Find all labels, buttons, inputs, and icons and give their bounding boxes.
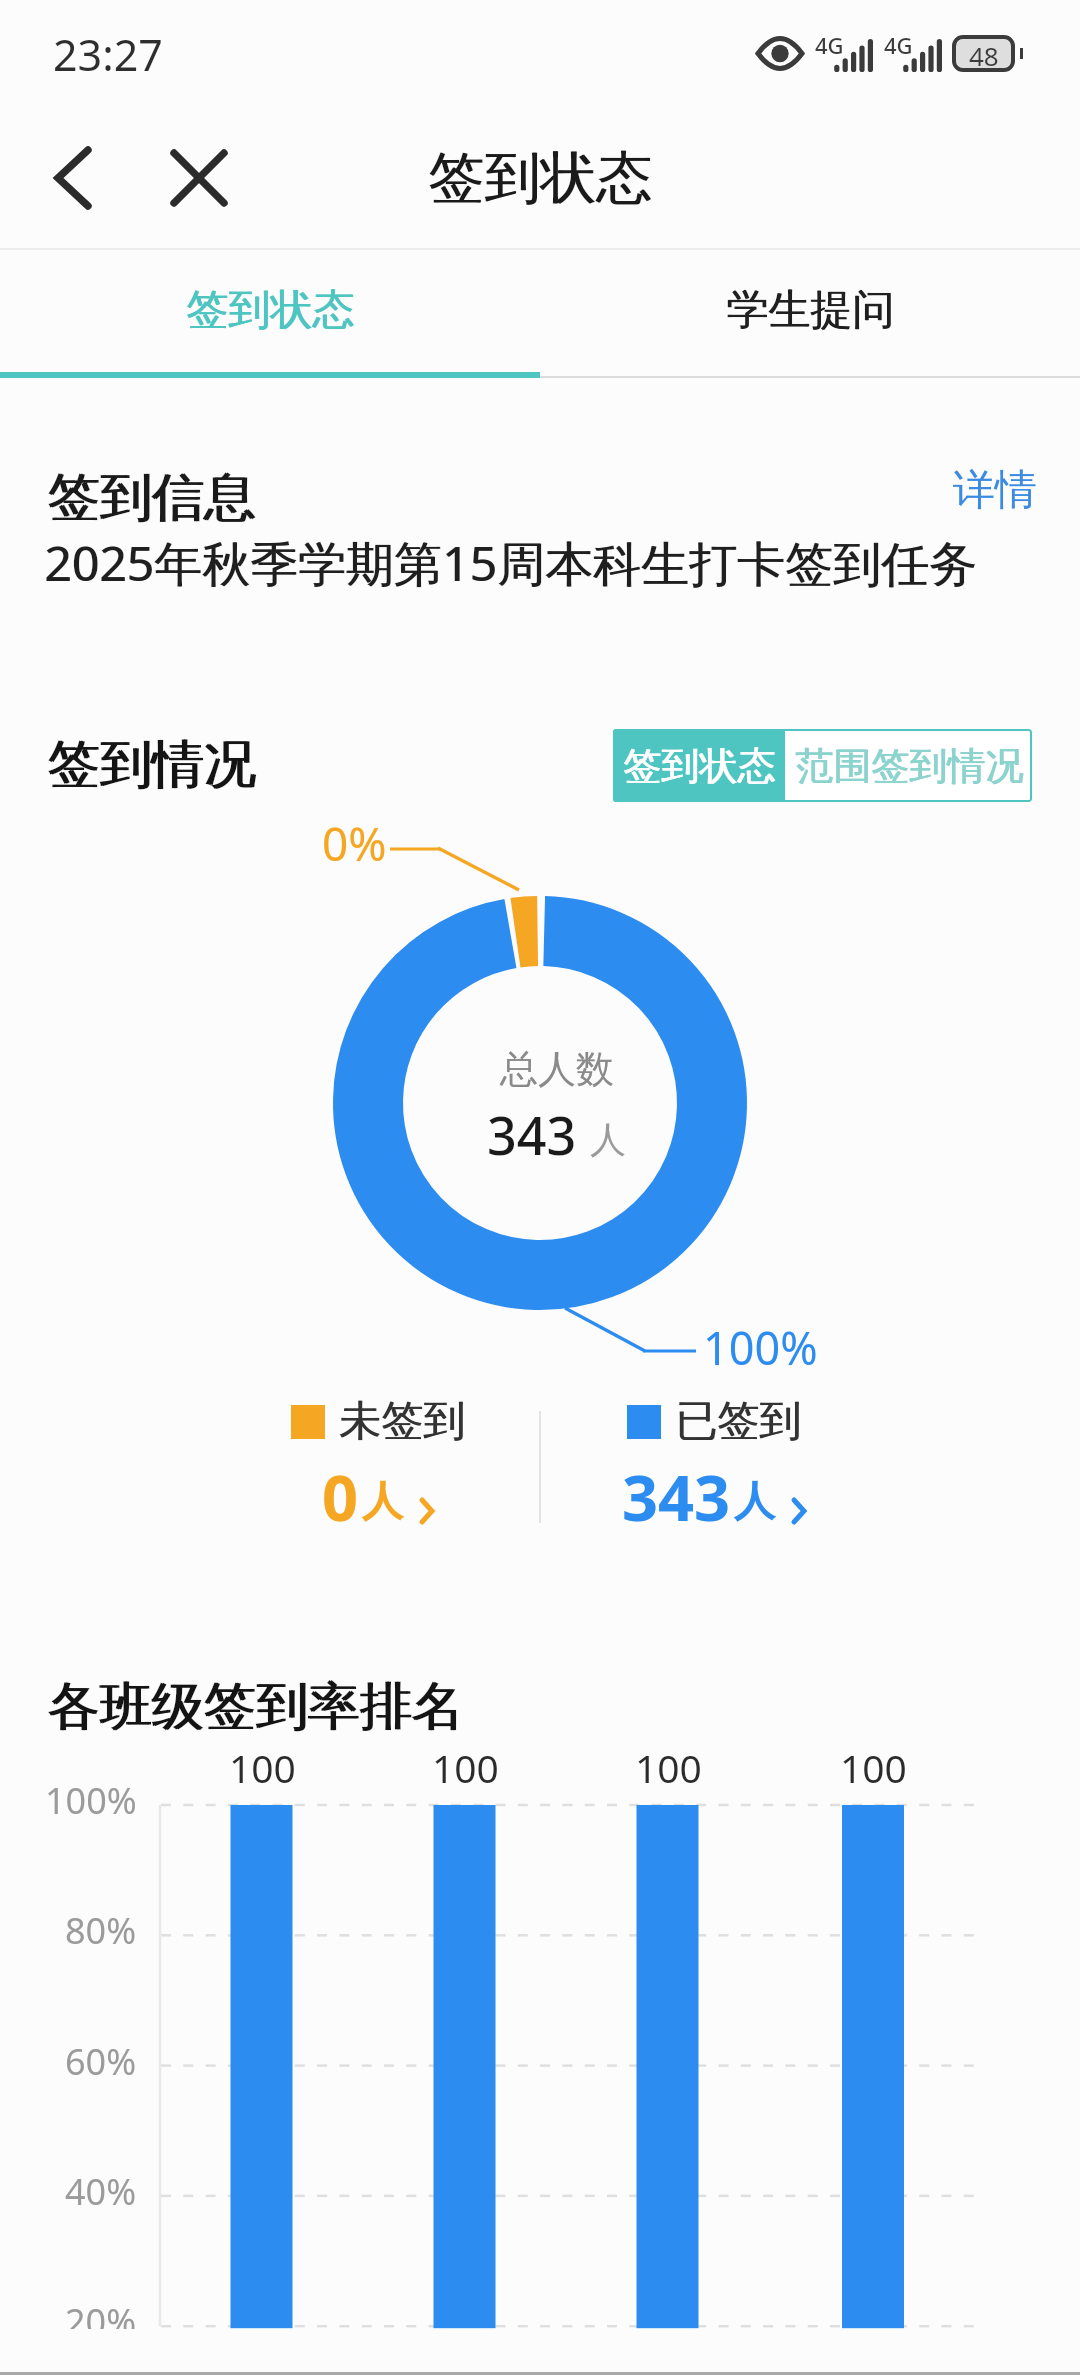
staticText: 100 — [432, 1741, 499, 1794]
staticText: 2025年秋季学期第15周本科生打卡签到任务 — [45, 530, 978, 596]
staticText: 40% — [65, 2167, 137, 2216]
staticText: 总人数 — [500, 1045, 614, 1093]
staticText: 范围签到情况 — [795, 742, 1023, 790]
staticText: 4G — [815, 30, 844, 60]
staticText: 学生提问 — [726, 284, 894, 337]
staticText: 100% — [703, 1317, 818, 1378]
staticText: 100% — [45, 1776, 137, 1825]
button[interactable]: 学生提问 — [540, 248, 1080, 372]
staticText: 各班级签到率排名 — [47, 1674, 463, 1740]
staticText: 签到状态 — [429, 143, 653, 214]
staticText: 人 — [734, 1476, 775, 1528]
staticText: 人 — [362, 1476, 403, 1528]
staticText: 60% — [65, 2037, 137, 2086]
staticText: 2025年秋季学期第15周本科生打卡签到任务 — [44, 530, 977, 596]
staticText: 签到状态 — [186, 284, 354, 337]
staticText: 100 — [840, 1741, 907, 1794]
button[interactable]: 未签到 — [188, 1395, 568, 1540]
staticText: 未签到 — [340, 1395, 466, 1448]
staticText: 签到状态 — [428, 143, 652, 214]
staticText: 学生提问 — [727, 284, 895, 337]
button[interactable]: 签到状态 — [0, 248, 540, 372]
button[interactable]: Back — [33, 138, 113, 218]
button[interactable]: 详情 — [937, 458, 1052, 522]
staticText: 签到状态 — [624, 742, 776, 790]
button[interactable]: 范围签到情况 — [785, 729, 1032, 802]
staticText: 范围签到情况 — [796, 742, 1024, 790]
staticText: 0% — [322, 812, 387, 875]
staticText: 签到信息 — [47, 465, 255, 531]
staticText: 各班级签到率排名 — [49, 1674, 465, 1740]
staticText: 100 — [635, 1741, 702, 1794]
staticText: 48 — [969, 39, 999, 67]
staticText: 343 — [487, 1099, 577, 1170]
staticText: 签到情况 — [49, 732, 257, 798]
staticText: 详情 — [953, 464, 1037, 517]
staticText: 签到信息 — [49, 465, 257, 531]
staticText: 人 — [590, 1117, 626, 1162]
staticText: 签到状态 — [187, 284, 355, 337]
button[interactable]: 签到状态 — [613, 729, 785, 802]
staticText: 23:27 — [53, 25, 163, 84]
staticText: 未签到 — [339, 1395, 465, 1448]
staticText: 4G — [884, 30, 913, 60]
staticText: 已签到 — [675, 1395, 801, 1448]
staticText: 80% — [65, 1906, 137, 1955]
staticText: 签到状态 — [623, 742, 775, 790]
button[interactable]: Close — [159, 138, 239, 218]
button[interactable]: 已签到 — [524, 1395, 904, 1540]
staticText: 20% — [65, 2297, 137, 2329]
staticText: 343 — [622, 1454, 731, 1540]
staticText: 0 — [322, 1454, 359, 1540]
staticText: 签到情况 — [47, 732, 255, 798]
staticText: 100 — [229, 1741, 296, 1794]
staticText: 已签到 — [676, 1395, 802, 1448]
